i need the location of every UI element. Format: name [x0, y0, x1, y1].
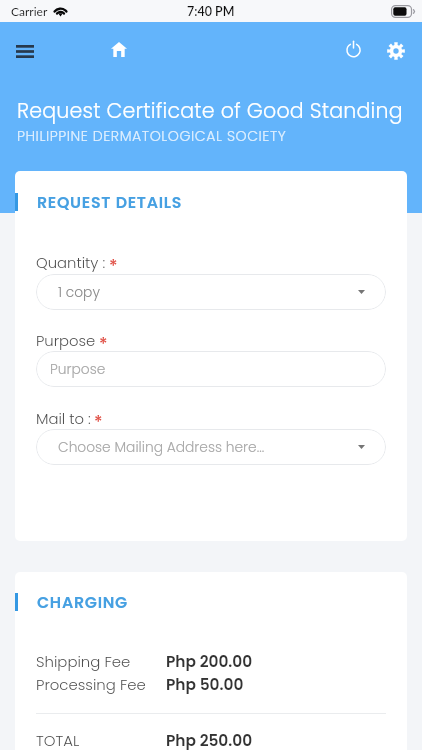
staticText: Request Certificate of Good Standing — [17, 96, 403, 125]
staticText: Php 200.00 — [166, 651, 253, 673]
staticText: Choose Mailing Address here... — [58, 438, 265, 457]
staticText: * — [99, 332, 108, 356]
staticText: * — [94, 410, 103, 434]
staticText: Shipping Fee — [36, 651, 131, 672]
staticText: PHILIPPINE DERMATOLOGICAL SOCIETY — [17, 126, 287, 146]
staticText: * — [109, 254, 118, 278]
button[interactable]: Home — [102, 33, 135, 66]
staticText: 1 copy — [58, 283, 100, 302]
button[interactable]: Open navigation menu — [8, 35, 41, 68]
button[interactable]: Purpose — [36, 351, 386, 387]
staticText: Processing Fee — [36, 674, 146, 695]
button[interactable]: Settings — [379, 34, 412, 67]
staticText: Mail to : — [36, 408, 91, 429]
staticText: REQUEST DETAILS — [37, 191, 183, 213]
staticText: Php 250.00 — [166, 730, 253, 750]
staticText: Quantity : — [36, 252, 106, 273]
staticText: CHARGING — [37, 591, 128, 613]
staticText: Php 50.00 — [166, 674, 244, 696]
staticText: Purpose — [50, 360, 106, 379]
staticText: Purpose — [36, 330, 96, 351]
staticText: Carrier — [11, 4, 48, 18]
staticText: TOTAL — [36, 730, 80, 750]
button[interactable]: 1 copy — [36, 274, 386, 310]
button[interactable]: Log out — [337, 32, 370, 65]
staticText: 7:40 PM — [187, 4, 235, 19]
button[interactable]: Choose Mailing Address here... — [36, 429, 386, 465]
